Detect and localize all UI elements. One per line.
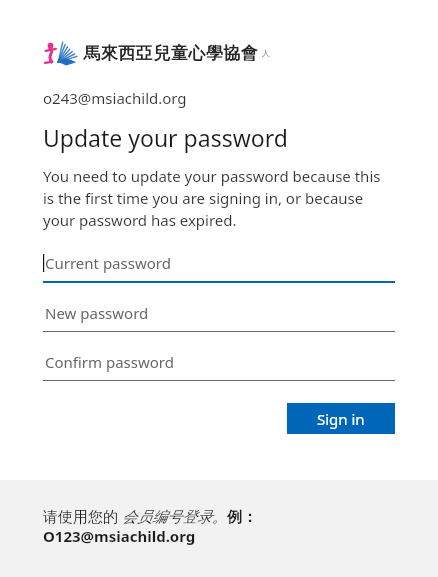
staticText: New password xyxy=(45,303,149,323)
staticText: Update your password xyxy=(43,122,288,153)
staticText: Sign in xyxy=(317,409,365,429)
staticText: o243@msiachild.org xyxy=(43,88,187,108)
other: Organisation logo xyxy=(43,40,77,66)
staticText: You need to update your password because… xyxy=(43,166,395,231)
staticText: 人 xyxy=(262,48,270,58)
staticText: Confirm password xyxy=(45,352,174,372)
staticText: Current password xyxy=(45,253,171,273)
staticText: O123@msiachild.org xyxy=(43,526,196,546)
staticText: 请使用您的 会员编号登录。例： xyxy=(43,506,257,526)
button[interactable]: New password xyxy=(43,301,395,332)
button[interactable]: Confirm password xyxy=(43,350,395,381)
button[interactable]: Sign in xyxy=(287,403,395,434)
button[interactable]: Current password xyxy=(43,251,395,283)
staticText: 馬來西亞兒童心學協會 xyxy=(83,43,258,64)
